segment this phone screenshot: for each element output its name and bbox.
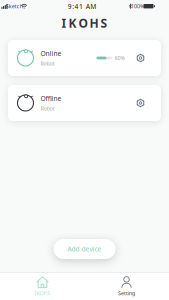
button[interactable]: Device settings bbox=[136, 53, 145, 62]
button[interactable]: Online bbox=[8, 40, 161, 76]
staticText: IKOHS bbox=[34, 290, 50, 297]
staticText: Setting bbox=[118, 290, 135, 297]
staticText: Robot bbox=[40, 105, 54, 112]
button[interactable]: Offline bbox=[8, 85, 161, 121]
staticText: Online bbox=[40, 49, 61, 58]
staticText: IKOHS bbox=[61, 15, 107, 31]
staticText: Offline bbox=[40, 94, 61, 103]
button[interactable]: IKOHS home bbox=[10, 274, 74, 299]
button[interactable]: Setting bbox=[94, 274, 158, 299]
staticText: 9:41 AM bbox=[68, 2, 96, 11]
button[interactable]: Add device bbox=[53, 239, 115, 259]
staticText: 100% bbox=[131, 3, 144, 10]
staticText: 60% bbox=[114, 54, 124, 62]
button[interactable]: Device settings bbox=[136, 98, 145, 107]
staticText: Robot bbox=[40, 60, 54, 67]
staticText: Sketch bbox=[6, 3, 23, 10]
staticText: Add device bbox=[67, 245, 101, 253]
